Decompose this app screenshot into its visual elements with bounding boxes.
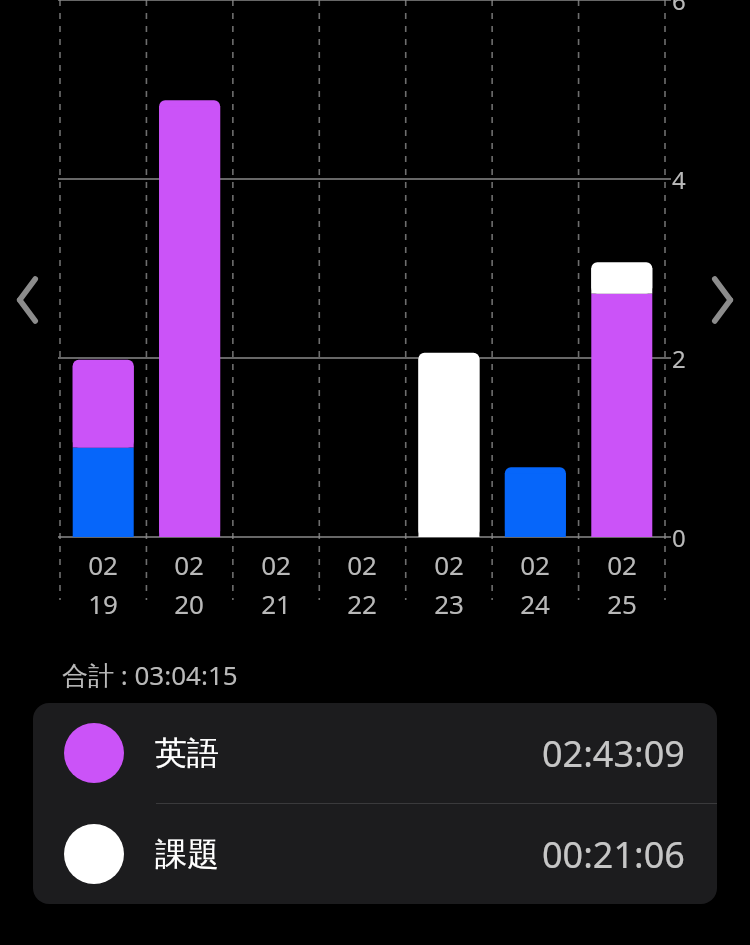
button[interactable]: 課題 <box>33 804 717 904</box>
staticText: 02 <box>174 547 204 582</box>
staticText: 合計 : 03:04:15 <box>62 657 238 693</box>
button[interactable]: Next week <box>696 268 748 332</box>
staticText: 4 <box>672 163 686 196</box>
staticText: 課題 <box>155 834 219 874</box>
staticText: 02 <box>88 547 118 582</box>
staticText: 24 <box>520 586 550 621</box>
staticText: 02:43:09 <box>542 729 685 778</box>
staticText: 00:21:06 <box>542 830 685 879</box>
staticText: 23 <box>434 586 464 621</box>
staticText: 20 <box>174 586 204 621</box>
staticText: 02 <box>520 547 550 582</box>
staticText: 02 <box>261 547 291 582</box>
staticText: 02 <box>434 547 464 582</box>
staticText: 02 <box>347 547 377 582</box>
staticText: 2 <box>672 342 686 375</box>
staticText: 0 <box>672 521 686 554</box>
button[interactable]: 英語 <box>33 703 717 803</box>
staticText: 25 <box>607 586 637 621</box>
staticText: 22 <box>347 586 377 621</box>
staticText: 19 <box>88 586 118 621</box>
button[interactable]: Previous week <box>2 268 54 332</box>
staticText: 6 <box>672 0 686 17</box>
staticText: 英語 <box>155 733 219 773</box>
staticText: 21 <box>261 586 291 621</box>
staticText: 02 <box>607 547 637 582</box>
